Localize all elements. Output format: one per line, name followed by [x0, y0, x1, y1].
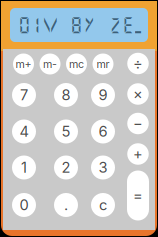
button[interactable]: m-	[39, 53, 60, 74]
staticText: 2	[61, 159, 70, 176]
button[interactable]: 3	[91, 155, 115, 179]
button[interactable]: mc	[66, 53, 87, 74]
staticText: −	[133, 115, 143, 132]
staticText: 9	[98, 86, 107, 104]
button[interactable]: .	[54, 193, 78, 217]
staticText: ×	[133, 85, 143, 103]
staticText: 7	[20, 86, 28, 104]
button[interactable]: c	[91, 193, 115, 217]
staticText: .	[64, 196, 68, 214]
staticText: ÷	[133, 55, 143, 72]
button[interactable]: −	[127, 113, 149, 134]
button[interactable]: ×	[127, 83, 149, 105]
staticText: mc	[69, 57, 84, 70]
button[interactable]: 9	[91, 83, 115, 107]
staticText: 0	[19, 196, 28, 214]
staticText: 8	[61, 86, 70, 104]
staticText: +	[133, 145, 143, 163]
button[interactable]: mr	[92, 53, 113, 74]
staticText: m-	[43, 57, 57, 70]
staticText: 3	[98, 159, 107, 176]
staticText: 1	[21, 159, 27, 176]
button[interactable]: ÷	[127, 53, 149, 74]
staticText: mr	[96, 57, 109, 70]
staticText: 5	[61, 123, 70, 140]
staticText: m+	[15, 57, 31, 70]
staticText: 4	[19, 123, 28, 140]
staticText: 6	[98, 123, 107, 140]
staticText: c	[99, 196, 107, 214]
button[interactable]: 1	[12, 155, 36, 179]
button[interactable]: 7	[12, 83, 36, 107]
button[interactable]: 4	[12, 119, 36, 143]
staticText: =	[133, 187, 143, 204]
button[interactable]: m+	[13, 53, 34, 74]
button[interactable]: 0	[12, 193, 36, 217]
button[interactable]: 8	[54, 83, 78, 107]
button[interactable]: +	[127, 143, 149, 165]
staticText: DIV BY ZERO	[18, 15, 142, 35]
button[interactable]: 5	[54, 119, 78, 143]
button[interactable]: 2	[54, 155, 78, 179]
button[interactable]: =	[127, 170, 149, 220]
button[interactable]: 6	[91, 119, 115, 143]
